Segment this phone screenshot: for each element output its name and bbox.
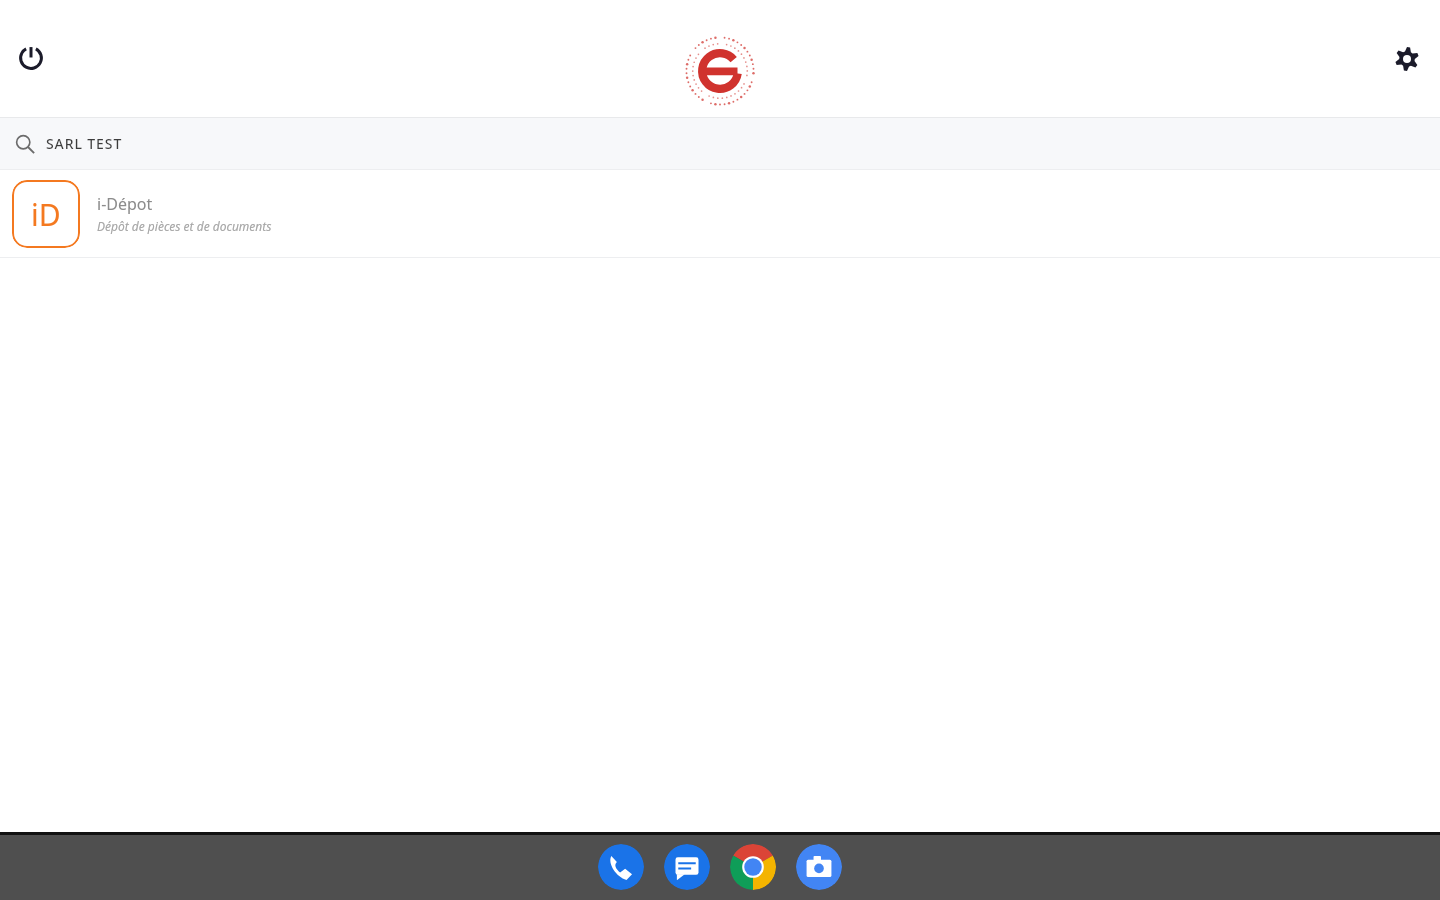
button[interactable]: SARL TEST: [0, 118, 1440, 169]
staticText: iD: [31, 194, 61, 235]
button[interactable]: Messages: [664, 844, 710, 890]
button[interactable]: Power: [7, 34, 55, 82]
staticText: Dépôt de pièces et de documents: [97, 218, 272, 234]
button[interactable]: Camera: [796, 844, 842, 890]
button[interactable]: Settings: [1383, 35, 1431, 83]
button[interactable]: Chrome: [730, 844, 776, 890]
staticText: i-Dépot: [97, 193, 153, 215]
staticText: SARL TEST: [46, 134, 123, 153]
button[interactable]: Phone: [598, 844, 644, 890]
button[interactable]: Logo: [682, 33, 758, 109]
button[interactable]: iD: [0, 170, 1440, 257]
